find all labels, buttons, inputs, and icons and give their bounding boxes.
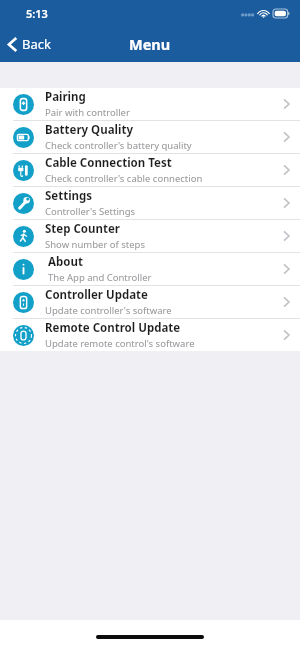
staticText: Check controller's battery quality xyxy=(45,139,192,152)
staticText: Show number of steps xyxy=(45,238,146,251)
staticText: Cable Connection Test xyxy=(45,155,172,171)
other: Open xyxy=(283,296,290,308)
staticText: Pair with controller xyxy=(45,106,130,119)
other: Open xyxy=(283,230,290,242)
button[interactable]: Back xyxy=(0,31,61,57)
button[interactable]: Pairing xyxy=(0,88,300,120)
other: Open xyxy=(283,329,290,341)
staticText: Battery Quality xyxy=(45,122,133,138)
staticText: Step Counter xyxy=(45,221,120,237)
button[interactable]: Remote Control Update xyxy=(0,319,300,351)
button[interactable]: Battery Quality xyxy=(0,121,300,153)
staticText: Controller Update xyxy=(45,287,148,303)
other: Open xyxy=(283,98,290,110)
staticText: Controller's Settings xyxy=(45,205,136,218)
staticText: The App and Controller xyxy=(48,271,152,284)
button[interactable]: About xyxy=(0,253,300,285)
other: Open xyxy=(283,197,290,209)
staticText: Remote Control Update xyxy=(45,320,181,336)
other: Open xyxy=(283,263,290,275)
other: Open xyxy=(283,131,290,143)
staticText: Menu xyxy=(129,34,171,54)
staticText: Check controller's cable connection xyxy=(45,172,203,185)
staticText: Update remote control's software xyxy=(45,337,195,350)
button[interactable]: Cable Connection Test xyxy=(0,154,300,186)
staticText: Pairing xyxy=(45,89,86,105)
staticText: Update controller's software xyxy=(45,304,172,317)
button[interactable]: Controller Update xyxy=(0,286,300,318)
button[interactable]: Step Counter xyxy=(0,220,300,252)
staticText: About xyxy=(48,254,83,270)
staticText: Settings xyxy=(45,188,93,204)
staticText: Back xyxy=(22,35,51,53)
other: Open xyxy=(283,164,290,176)
staticText: 5:13 xyxy=(26,6,48,21)
button[interactable]: Settings xyxy=(0,187,300,219)
